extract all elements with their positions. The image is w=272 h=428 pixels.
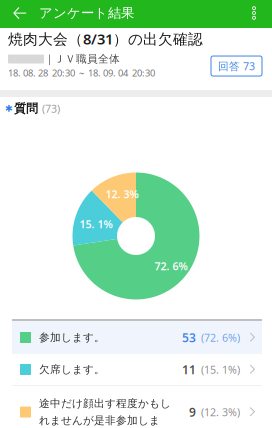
staticText: ｜ＪＶ職員全体 xyxy=(44,52,120,66)
staticText: 15. 1% xyxy=(79,217,112,231)
staticText: (12. 3%) xyxy=(201,405,240,419)
staticText: アンケート結果 xyxy=(39,5,134,21)
button[interactable]: 回答 73 xyxy=(211,56,262,76)
button[interactable]: Back xyxy=(0,0,39,28)
staticText: 9 xyxy=(189,404,196,420)
button[interactable]: 途中だけ顔出す程度かもしれませんが是非参加しま xyxy=(12,386,262,428)
staticText: 18. 08. 28 20:30 ~ 18. 09. 04 20:30 xyxy=(8,67,155,79)
button[interactable]: 参加します。 xyxy=(12,321,262,354)
staticText: 12. 3% xyxy=(105,187,138,201)
staticText: 53 xyxy=(182,329,196,345)
staticText: 11 xyxy=(182,361,196,377)
staticText: 焼肉大会（8/31）の出欠確認 xyxy=(8,29,203,48)
staticText: (72. 6%) xyxy=(201,330,240,345)
staticText: (73) xyxy=(42,101,60,116)
staticText: (15. 1%) xyxy=(201,362,240,377)
staticText: 回答 73 xyxy=(218,59,255,73)
staticText: 72. 6% xyxy=(154,259,187,273)
staticText: ✱ xyxy=(5,103,13,114)
staticText: 欠席します。 xyxy=(39,363,105,376)
staticText: 質問 xyxy=(14,101,38,116)
staticText: 参加します。 xyxy=(39,331,105,344)
button[interactable]: More options xyxy=(248,0,272,28)
button[interactable]: 欠席します。 xyxy=(12,354,262,385)
staticText: 途中だけ顔出す程度かもしれませんが是非参加しま xyxy=(39,397,171,427)
